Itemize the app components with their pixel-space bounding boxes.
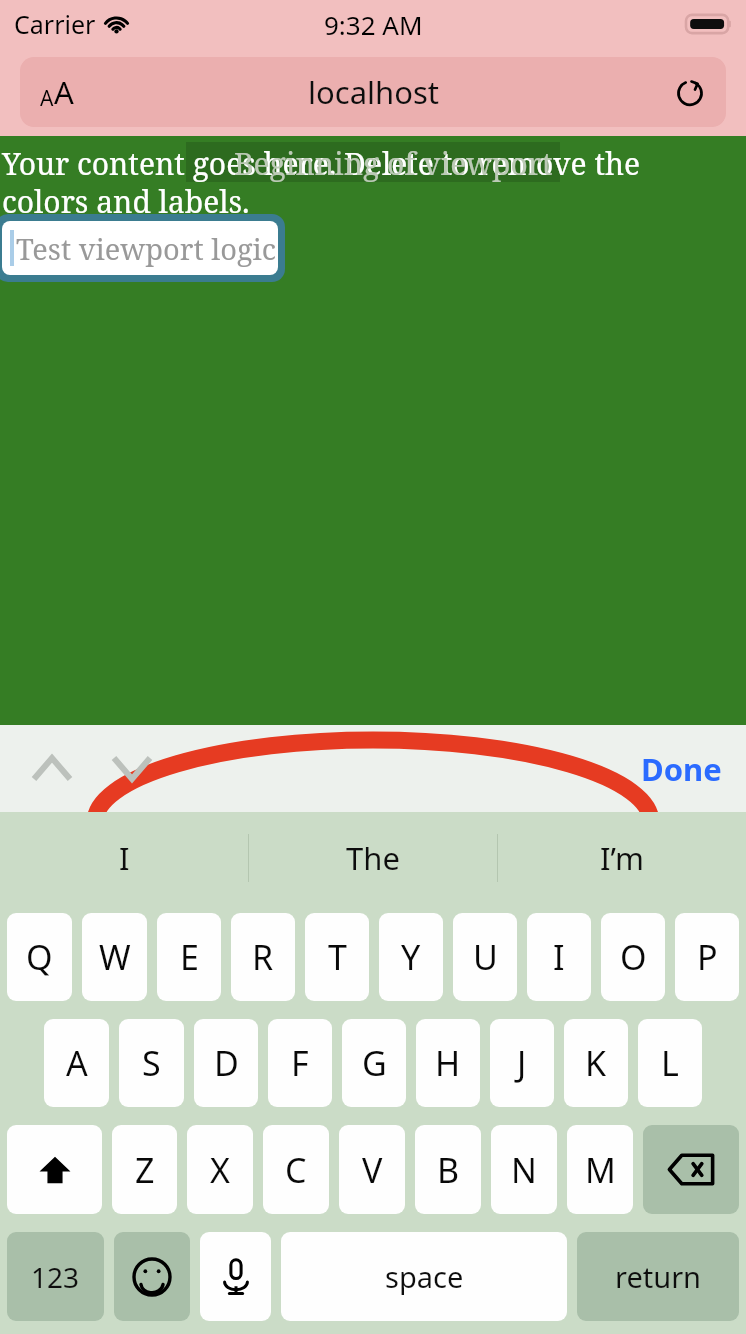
staticText: L [661,1040,679,1086]
staticText: K [585,1040,607,1086]
button[interactable]: X [187,1125,253,1214]
button[interactable]: return [577,1232,739,1321]
staticText: C [285,1147,307,1193]
staticText: G [362,1040,387,1086]
button[interactable]: Done [633,740,730,798]
staticText: Test viewport logic [16,229,277,268]
button[interactable]: K [564,1019,628,1107]
staticText: Carrier [14,7,96,41]
button[interactable]: space [281,1232,567,1321]
staticText: H [435,1040,461,1086]
button[interactable]: M [567,1125,633,1214]
staticText: J [517,1040,527,1086]
button[interactable]: T [305,913,369,1001]
button[interactable]: Previous field [22,744,82,793]
button[interactable]: Z [112,1125,177,1214]
button[interactable]: D [194,1019,258,1107]
button[interactable]: R [231,913,295,1001]
button[interactable]: The [248,812,497,904]
staticText: A [66,1040,88,1086]
button[interactable]: Emoji [114,1232,190,1321]
staticText: S [142,1040,161,1086]
staticText: I [119,837,130,879]
staticText: I [553,934,565,980]
staticText: F [291,1040,309,1086]
staticText: 123 [31,1258,80,1296]
button[interactable]: G [342,1019,406,1107]
staticText: Done [641,748,722,790]
staticText: 9:32 AM [324,7,423,42]
button[interactable]: A [44,1019,109,1107]
button[interactable]: N [491,1125,557,1214]
staticText: Beginning of viewport [234,143,553,184]
staticText: P [697,934,718,980]
button[interactable]: O [601,913,665,1001]
button[interactable]: S [119,1019,184,1107]
button[interactable]: U [453,913,517,1001]
button[interactable]: J [490,1019,554,1107]
staticText: E [180,934,199,980]
staticText: I’m [600,837,644,879]
button[interactable]: I’m [497,812,746,904]
staticText: U [473,934,498,980]
button[interactable]: Page settings, text size [32,65,82,119]
button[interactable]: Test viewport logic [2,221,278,275]
staticText: The [346,837,400,879]
button[interactable]: Shift [7,1125,102,1214]
staticText: Y [401,934,421,980]
staticText: Q [26,934,53,980]
staticText: O [620,934,647,980]
staticText: localhost [308,71,439,113]
staticText: D [214,1040,239,1086]
staticText: Your content goes here. Delete to remove… [2,143,641,184]
button[interactable]: F [268,1019,332,1107]
button[interactable]: 123 [7,1232,104,1321]
button[interactable]: I [0,812,248,904]
button[interactable]: C [263,1125,329,1214]
button[interactable]: Q [7,913,72,1001]
staticText: space [385,1257,464,1296]
button[interactable]: L [638,1019,702,1107]
staticText: B [437,1147,460,1193]
staticText: R [252,934,274,980]
button[interactable]: I [527,913,591,1001]
staticText: A [54,71,74,113]
staticText: colors and labels. [2,181,250,222]
button[interactable]: Reload page [668,70,712,114]
button[interactable]: Backspace [643,1125,739,1214]
button[interactable]: W [82,913,147,1001]
staticText: X [210,1147,230,1193]
button[interactable]: Page settings, text size [20,57,726,127]
button[interactable]: P [675,913,739,1001]
staticText: V [362,1147,383,1193]
button[interactable]: H [416,1019,480,1107]
button[interactable]: Y [379,913,443,1001]
staticText: T [328,934,347,980]
button[interactable]: V [339,1125,405,1214]
staticText: A [40,84,54,113]
staticText: return [615,1257,702,1296]
button[interactable]: B [415,1125,481,1214]
staticText: N [511,1147,537,1193]
button[interactable]: Next field [102,744,162,793]
staticText: W [99,934,131,980]
staticText: M [585,1147,616,1193]
button[interactable]: Dictation [200,1232,271,1321]
staticText: Z [135,1147,155,1193]
button[interactable]: E [157,913,221,1001]
